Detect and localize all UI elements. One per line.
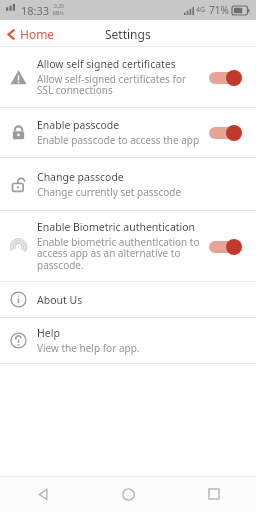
staticText: Enable passcode to access the app (37, 133, 200, 147)
button[interactable]: Toggle Allow self signed certificates (209, 69, 243, 86)
staticText: Help (37, 326, 60, 340)
staticText: Allow self-signed certificates for SSL c… (37, 72, 187, 97)
staticText: Enable biometric authentication to acces… (37, 235, 200, 272)
staticText: Enable Biometric authentication (37, 220, 196, 234)
staticText: 0.20 (54, 3, 64, 10)
button[interactable]: Home (86, 476, 171, 512)
button[interactable]: Help (0, 318, 256, 363)
staticText: Change passcode (37, 170, 124, 184)
button[interactable]: Allow self signed certificates (0, 47, 256, 107)
button[interactable]: Toggle Enable Biometric authentication (209, 238, 243, 255)
staticText: Change currently set passcode (37, 185, 182, 199)
staticText: Allow self signed certificates (37, 57, 176, 71)
button[interactable]: Toggle Enable passcode (209, 124, 243, 141)
button[interactable]: About Us (0, 282, 256, 317)
staticText: Enable passcode (37, 118, 120, 132)
button[interactable]: Home (0, 22, 63, 46)
staticText: View the help for app. (37, 341, 140, 355)
staticText: 18:33 (21, 3, 50, 18)
staticText: 71% (209, 3, 229, 17)
button[interactable]: Back (0, 476, 86, 512)
staticText: About Us (37, 293, 83, 307)
button[interactable]: Recent apps (171, 476, 256, 512)
staticText: Settings (105, 26, 151, 42)
staticText: 4G (196, 5, 206, 15)
staticText: KB/s (53, 10, 64, 17)
button[interactable]: Enable passcode (0, 108, 256, 157)
button[interactable]: Enable Biometric authentication (0, 211, 256, 281)
button[interactable]: Change passcode (0, 158, 256, 210)
staticText: Home (20, 26, 55, 42)
